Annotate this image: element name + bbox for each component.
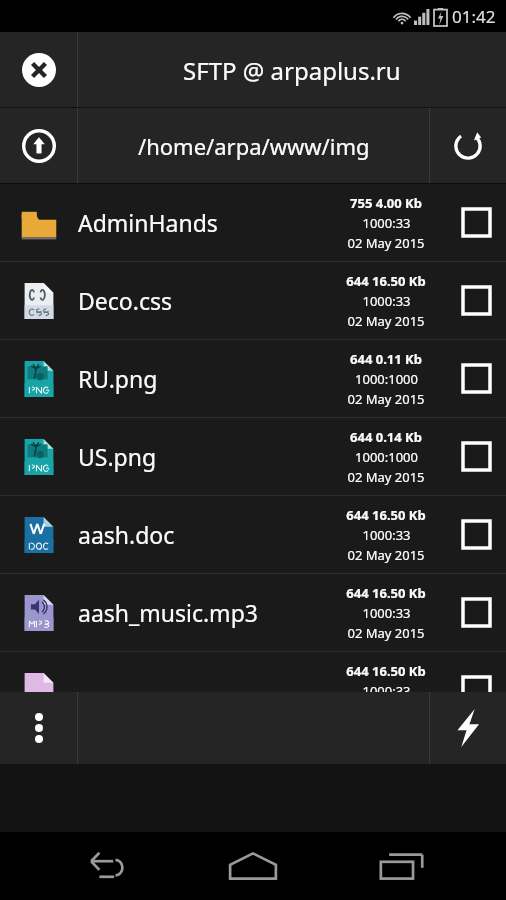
button[interactable]: RU.png bbox=[0, 340, 506, 417]
staticText: 1000:33 bbox=[362, 682, 411, 700]
staticText: 02 May 2015 bbox=[347, 624, 425, 642]
staticText: aash_music.mp3 bbox=[78, 597, 326, 628]
staticText: 755 4.00 Kb bbox=[350, 194, 422, 212]
staticText: RU.png bbox=[78, 363, 326, 394]
staticText: 644 0.14 Kb bbox=[350, 428, 422, 446]
button[interactable]: More options bbox=[0, 692, 77, 764]
button[interactable]: Select Deco.css bbox=[446, 262, 506, 339]
button[interactable]: Select RU.png bbox=[446, 340, 506, 417]
staticText bbox=[78, 675, 326, 706]
staticText: US.png bbox=[78, 441, 326, 472]
staticText: 1000:33 bbox=[362, 604, 411, 622]
button[interactable]: Select bbox=[446, 652, 506, 729]
button[interactable]: aash.doc bbox=[0, 496, 506, 573]
button[interactable]: Close bbox=[0, 32, 77, 108]
staticText: 644 16.50 Kb bbox=[346, 506, 426, 524]
staticText: SFTP @ arpaplus.ru bbox=[183, 54, 401, 87]
staticText: 1000:33 bbox=[362, 292, 411, 310]
staticText: aash.doc bbox=[78, 519, 326, 550]
button[interactable]: Select aash_music.mp3 bbox=[446, 574, 506, 651]
staticText: 644 16.50 Kb bbox=[346, 272, 426, 290]
staticText: 1000:33 bbox=[362, 214, 411, 232]
staticText: 1000:1000 bbox=[355, 448, 418, 466]
staticText: Deco.css bbox=[78, 285, 326, 316]
staticText: AdminHands bbox=[78, 207, 326, 238]
button[interactable]: US.png bbox=[0, 418, 506, 495]
staticText: 02 May 2015 bbox=[347, 468, 425, 486]
button[interactable]: AdminHands bbox=[0, 184, 506, 261]
staticText: 1000:33 bbox=[362, 526, 411, 544]
button[interactable]: Quick actions bbox=[430, 692, 506, 764]
button[interactable]: Select AdminHands bbox=[446, 184, 506, 261]
staticText: 02 May 2015 bbox=[347, 312, 425, 330]
staticText: /home/arpa/www/img bbox=[138, 131, 370, 161]
button[interactable]: Select US.png bbox=[446, 418, 506, 495]
button[interactable]: Refresh bbox=[430, 108, 506, 184]
button[interactable]: aash_music.mp3 bbox=[0, 574, 506, 651]
button[interactable]: Up one level bbox=[0, 108, 77, 184]
staticText: 644 16.50 Kb bbox=[346, 584, 426, 602]
button[interactable]: 644 16.50 Kb bbox=[0, 652, 506, 729]
button[interactable]: Back bbox=[59, 832, 149, 900]
staticText: 02 May 2015 bbox=[347, 546, 425, 564]
button[interactable]: /home/arpa/www/img bbox=[78, 108, 429, 184]
staticText: 02 May 2015 bbox=[347, 234, 425, 252]
button[interactable]: Recent apps bbox=[357, 832, 447, 900]
staticText: 644 0.11 Kb bbox=[350, 350, 422, 368]
button[interactable]: Home bbox=[208, 832, 298, 900]
button[interactable]: Select aash.doc bbox=[446, 496, 506, 573]
staticText: 1000:1000 bbox=[355, 370, 418, 388]
staticText: 02 May 2015 bbox=[347, 390, 425, 408]
staticText: 644 16.50 Kb bbox=[346, 662, 426, 680]
staticText: 01:42 bbox=[452, 5, 496, 28]
button[interactable]: Deco.css bbox=[0, 262, 506, 339]
